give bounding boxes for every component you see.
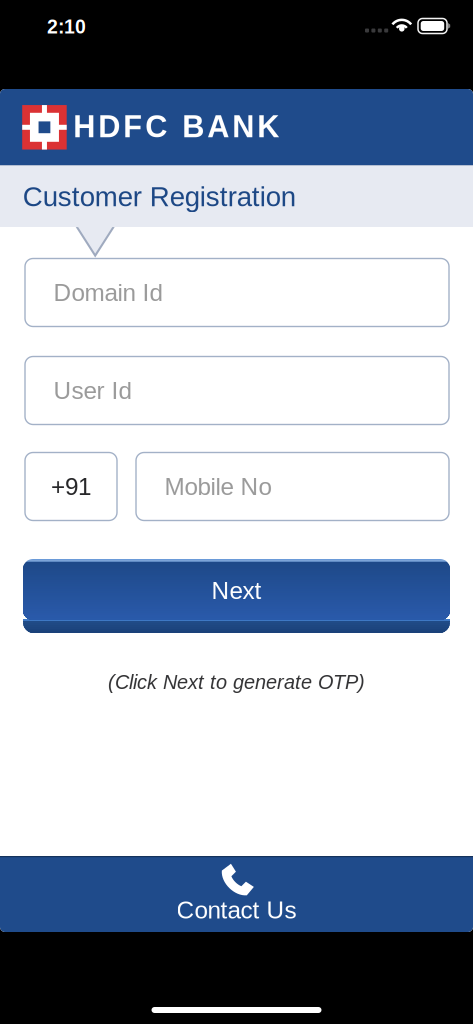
button[interactable]: Domain Id bbox=[25, 258, 449, 326]
staticText: +91 bbox=[51, 473, 91, 500]
staticText: Mobile No bbox=[164, 473, 271, 500]
button[interactable]: Contact Us bbox=[0, 856, 473, 932]
staticText: Domain Id bbox=[53, 279, 162, 306]
staticText: Customer Registration bbox=[23, 181, 296, 212]
staticText: User Id bbox=[53, 377, 131, 404]
staticText: Contact Us bbox=[176, 896, 296, 923]
button[interactable]: User Id bbox=[25, 356, 449, 424]
button[interactable]: Mobile No bbox=[136, 452, 449, 520]
staticText: Next bbox=[211, 577, 261, 604]
staticText: (Click Next to generate OTP) bbox=[108, 671, 365, 693]
button[interactable]: +91 bbox=[25, 452, 117, 520]
staticText: HDFC BANK bbox=[73, 109, 279, 144]
staticText: 2:10 bbox=[47, 16, 86, 38]
button[interactable]: Next bbox=[23, 559, 450, 633]
